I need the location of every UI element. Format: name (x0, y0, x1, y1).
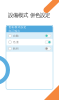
button[interactable]: 自動 (6, 33, 53, 39)
button[interactable]: 飽和 (6, 45, 53, 52)
staticText: 色溫 (13, 40, 19, 44)
staticText: 自訂輸出 (8, 29, 20, 33)
button[interactable]: 色溫 (6, 39, 53, 45)
staticText: 飽和 (13, 47, 19, 50)
staticText: 自動 (13, 34, 19, 37)
staticText: 色彩模式設定 (8, 25, 26, 29)
staticText: 設備模式 併色設定 (8, 12, 50, 19)
